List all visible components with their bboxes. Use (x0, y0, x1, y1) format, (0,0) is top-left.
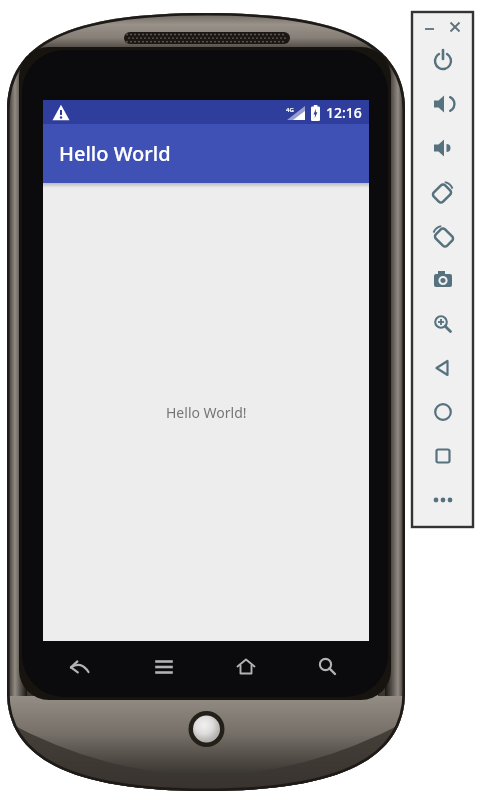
button[interactable] (421, 258, 465, 302)
staticText: Hello World (59, 140, 171, 167)
button[interactable] (421, 82, 465, 126)
button[interactable] (421, 478, 465, 522)
button[interactable] (308, 647, 348, 687)
button[interactable] (421, 126, 465, 170)
staticText: Hello World! (166, 403, 247, 422)
button[interactable] (421, 346, 465, 390)
button[interactable] (421, 434, 465, 478)
button[interactable] (421, 302, 465, 346)
button[interactable] (226, 647, 266, 687)
button[interactable] (421, 390, 465, 434)
button[interactable] (60, 647, 100, 687)
button[interactable] (144, 647, 184, 687)
staticText: 12:16 (326, 103, 362, 122)
button[interactable] (421, 170, 465, 214)
button[interactable] (419, 16, 441, 38)
staticText: 4G (286, 106, 294, 114)
button[interactable] (444, 16, 466, 38)
button[interactable] (421, 38, 465, 82)
button[interactable] (421, 214, 465, 258)
